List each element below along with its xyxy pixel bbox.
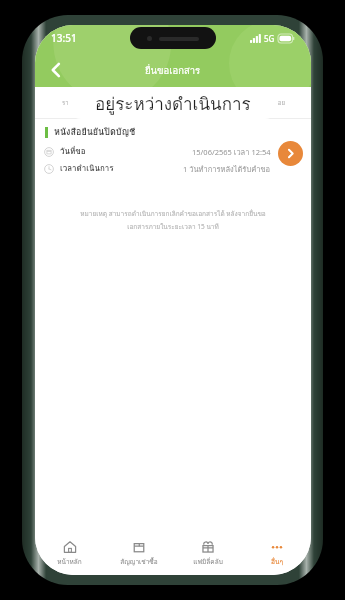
button[interactable]: สัญญาเช่าซื้อ — [104, 531, 173, 575]
staticText: 5G — [264, 33, 275, 44]
button[interactable]: สำเร็จ — [173, 87, 240, 119]
button[interactable]: อื่นๆ — [242, 531, 311, 575]
staticText: อยู่ระหว่างดำเนินการ — [95, 90, 251, 117]
button[interactable]: อยู่ระหว่าง — [106, 87, 173, 119]
staticText: 15/06/2565 เวลา 12:54 — [192, 146, 271, 158]
staticText: สำเร็จ — [199, 98, 215, 108]
staticText: หมายเหตุ สามารถดำเนินการยกเลิกคำขอเอกสาร… — [53, 209, 293, 231]
staticText: เรียบร้อย — [262, 98, 285, 108]
staticText: ยื่นขอเอกสาร — [145, 63, 201, 78]
button[interactable]: รายการ — [39, 87, 106, 119]
staticText: วันที่ขอ — [60, 145, 86, 158]
staticText: อื่นๆ — [271, 557, 283, 567]
staticText: รายการ — [62, 98, 83, 108]
button[interactable]: เรียบร้อย — [240, 87, 307, 119]
staticText: อยู่ระหว่าง — [126, 98, 154, 108]
staticText: สัญญาเช่าซื้อ — [120, 557, 158, 567]
button[interactable]: อยู่ระหว่างดำเนินการ — [68, 87, 278, 119]
staticText: หนังสือยืนยันปิดบัญชี — [54, 125, 136, 139]
staticText: หน้าหลัก — [57, 557, 82, 567]
staticText: 1 วันทำการหลังได้รับคำขอ — [183, 163, 271, 175]
button[interactable]: หน้าหลัก — [35, 531, 104, 575]
button[interactable]: View details — [278, 141, 303, 166]
staticText: เวลาดำเนินการ — [60, 162, 114, 175]
staticText: แฟมิลี่คลับ — [193, 557, 223, 567]
button[interactable]: Back — [41, 55, 71, 85]
button[interactable]: แฟมิลี่คลับ — [173, 531, 242, 575]
staticText: 13:51 — [51, 31, 77, 45]
